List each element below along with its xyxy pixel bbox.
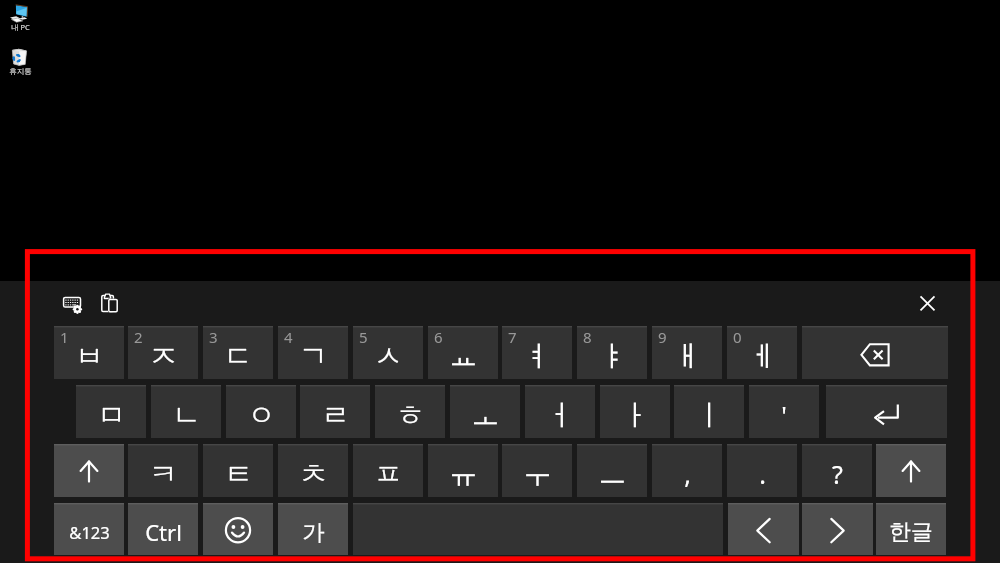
staticText: , bbox=[684, 457, 691, 491]
button[interactable]: 1 bbox=[54, 326, 124, 379]
staticText: ㄷ bbox=[224, 338, 253, 374]
staticText: ㅕ bbox=[523, 338, 552, 374]
staticText: Ctrl bbox=[145, 517, 182, 547]
staticText: ㅌ bbox=[224, 456, 253, 492]
button[interactable]: . bbox=[727, 444, 797, 497]
staticText: ㅐ bbox=[673, 338, 702, 374]
staticText: &123 bbox=[69, 521, 110, 543]
button[interactable]: ㅏ bbox=[600, 385, 670, 438]
staticText: 9 bbox=[658, 327, 667, 347]
staticText: ㅏ bbox=[621, 397, 650, 433]
staticText: 2 bbox=[134, 327, 143, 347]
staticText: 4 bbox=[284, 327, 293, 347]
staticText: 0 bbox=[733, 327, 742, 347]
button[interactable]: 8 bbox=[577, 326, 647, 379]
staticText: 한글 bbox=[889, 518, 933, 546]
button[interactable]: 7 bbox=[502, 326, 572, 379]
button[interactable]: Next bbox=[802, 503, 873, 555]
staticText: ㄹ bbox=[321, 397, 350, 433]
button[interactable]: ㅊ bbox=[278, 444, 348, 497]
button[interactable]: 가 bbox=[278, 503, 348, 555]
button[interactable]: ㅍ bbox=[353, 444, 423, 497]
button[interactable]: Backspace bbox=[802, 326, 948, 379]
staticText: ㅋ bbox=[149, 456, 178, 492]
button[interactable]: Ctrl bbox=[128, 503, 198, 555]
button[interactable]: ㅎ bbox=[375, 385, 445, 438]
button[interactable]: 내 PC bbox=[6, 2, 34, 32]
staticText: ㅁ bbox=[97, 397, 126, 433]
button[interactable]: ㄴ bbox=[151, 385, 221, 438]
staticText: ' bbox=[781, 398, 787, 432]
button[interactable]: Emoji bbox=[203, 503, 273, 555]
button[interactable]: 5 bbox=[353, 326, 423, 379]
staticText: ㅑ bbox=[598, 338, 627, 374]
button[interactable]: &123 bbox=[54, 503, 124, 555]
staticText: 3 bbox=[209, 327, 218, 347]
button[interactable]: ㅇ bbox=[226, 385, 296, 438]
button[interactable]: ? bbox=[802, 444, 872, 497]
button[interactable]: Close bbox=[908, 288, 944, 320]
button[interactable]: ㅠ bbox=[428, 444, 498, 497]
staticText: 가 bbox=[302, 518, 325, 546]
staticText: 5 bbox=[359, 327, 368, 347]
button[interactable]: Shift bbox=[876, 444, 946, 497]
staticText: 8 bbox=[583, 327, 592, 347]
staticText: 휴지통 bbox=[9, 67, 32, 76]
staticText: ㅠ bbox=[449, 456, 478, 492]
staticText: . bbox=[759, 457, 766, 491]
button[interactable]: ㄹ bbox=[300, 385, 370, 438]
staticText: ㅔ bbox=[748, 338, 777, 374]
button[interactable]: ㅓ bbox=[525, 385, 595, 438]
button[interactable]: 3 bbox=[203, 326, 273, 379]
button[interactable]: Previous bbox=[728, 503, 799, 555]
button[interactable]: 2 bbox=[128, 326, 198, 379]
button[interactable]: ' bbox=[749, 385, 819, 438]
staticText: ㅍ bbox=[374, 456, 403, 492]
button[interactable]: 한글 bbox=[876, 503, 946, 555]
button[interactable]: ㅗ bbox=[450, 385, 520, 438]
staticText: ㅗ bbox=[471, 397, 500, 433]
staticText: ㅈ bbox=[149, 338, 178, 374]
staticText: ㅓ bbox=[546, 397, 575, 433]
button[interactable]: Clipboard bbox=[101, 293, 119, 314]
staticText: ㅇ bbox=[247, 397, 276, 433]
staticText: 내 PC bbox=[11, 22, 30, 32]
button[interactable]: ㅋ bbox=[128, 444, 198, 497]
staticText: ㄴ bbox=[172, 397, 201, 433]
staticText: ㅊ bbox=[299, 456, 328, 492]
button[interactable]: ㅡ bbox=[577, 444, 647, 497]
button[interactable]: Shift bbox=[54, 444, 124, 497]
staticText: ㅛ bbox=[449, 338, 478, 374]
button[interactable]: Enter bbox=[826, 385, 947, 438]
button[interactable]: Keyboard settings bbox=[61, 295, 83, 315]
staticText: ㅡ bbox=[598, 456, 627, 492]
button[interactable]: ㅜ bbox=[502, 444, 572, 497]
button[interactable]: 6 bbox=[428, 326, 498, 379]
staticText: ㄱ bbox=[299, 338, 328, 374]
staticText: ㅣ bbox=[695, 397, 724, 433]
staticText: ㅜ bbox=[523, 456, 552, 492]
staticText: ㅂ bbox=[75, 338, 104, 374]
button[interactable]: 0 bbox=[727, 326, 797, 379]
staticText: ㅎ bbox=[396, 397, 425, 433]
button[interactable]: ㅌ bbox=[203, 444, 273, 497]
button[interactable]: ㅁ bbox=[76, 385, 146, 438]
staticText: ㅅ bbox=[374, 338, 403, 374]
button[interactable]: 4 bbox=[278, 326, 348, 379]
staticText: ? bbox=[832, 457, 843, 491]
staticText: 6 bbox=[434, 327, 443, 347]
button[interactable]: 9 bbox=[652, 326, 722, 379]
staticText: 7 bbox=[508, 327, 517, 347]
staticText: 1 bbox=[60, 327, 69, 347]
button[interactable]: 휴지통 bbox=[6, 45, 34, 76]
button[interactable]: , bbox=[652, 444, 722, 497]
button[interactable]: ㅣ bbox=[674, 385, 744, 438]
